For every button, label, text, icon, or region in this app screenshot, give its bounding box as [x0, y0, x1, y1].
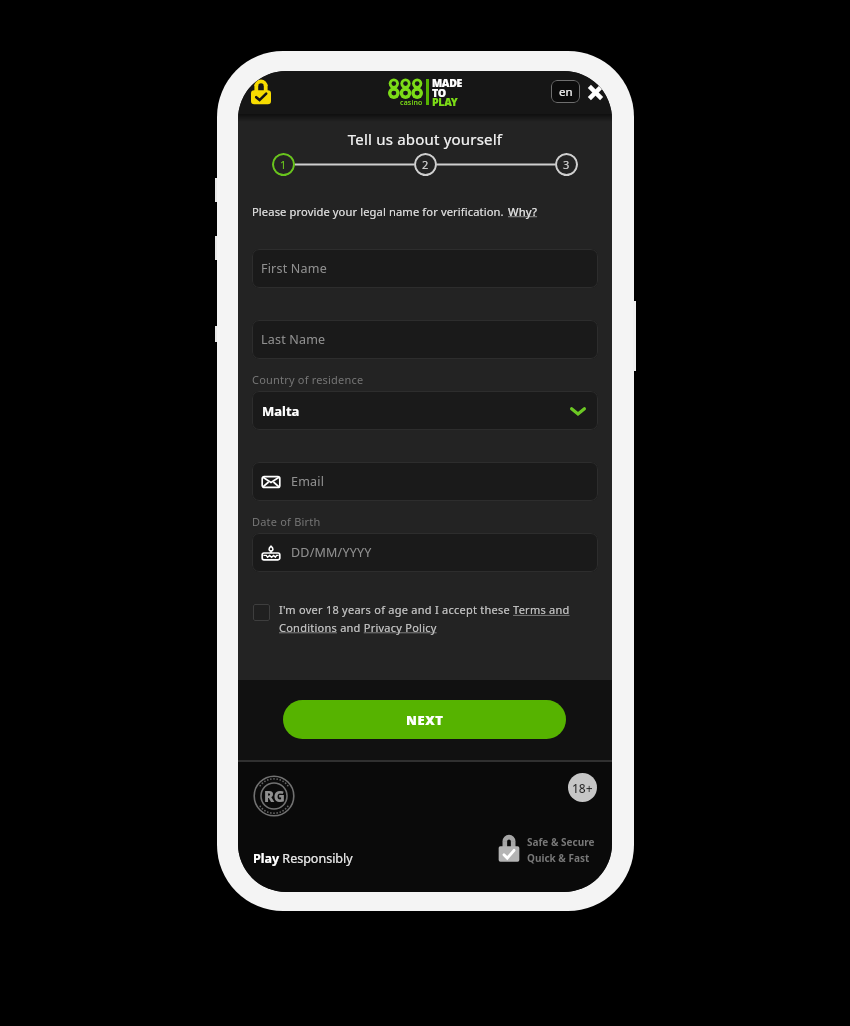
button[interactable]: 3: [555, 153, 578, 176]
button[interactable]: Malta: [252, 391, 598, 430]
button[interactable]: First Name: [252, 249, 598, 288]
staticText: Please provide your legal name for verif…: [252, 204, 504, 219]
staticText: PLAY: [432, 95, 458, 109]
staticText: DD/MM/YYYY: [291, 544, 372, 561]
button[interactable]: I'm over 18 years of age and I accept th…: [279, 602, 583, 635]
staticText: RG: [264, 786, 285, 806]
staticText: Country of residence: [252, 372, 364, 387]
button[interactable]: Accept terms checkbox: [253, 604, 270, 621]
staticText: 18+: [572, 780, 593, 796]
button[interactable]: 18 plus: [568, 773, 597, 802]
button[interactable]: Secure connection: [251, 79, 271, 105]
staticText: TO: [432, 86, 446, 100]
staticText: NEXT: [406, 711, 444, 729]
staticText: First Name: [261, 260, 327, 277]
button[interactable]: 1: [272, 153, 295, 176]
staticText: 1: [280, 157, 287, 172]
staticText: 3: [563, 157, 570, 172]
button[interactable]: en: [551, 80, 580, 103]
button[interactable]: Why?: [508, 204, 538, 219]
staticText: Why?: [508, 204, 538, 219]
staticText: casino: [400, 98, 423, 108]
button[interactable]: Responsible Gaming: [253, 775, 295, 817]
button[interactable]: Last Name: [252, 320, 598, 359]
staticText: Email: [291, 473, 325, 490]
staticText: 2: [422, 157, 429, 172]
button[interactable]: NEXT: [283, 700, 566, 739]
staticText: Last Name: [261, 331, 326, 348]
staticText: en: [559, 84, 573, 100]
staticText: MADE: [432, 76, 463, 90]
button[interactable]: Close: [587, 84, 604, 101]
button[interactable]: DD/MM/YYYY: [252, 533, 598, 572]
staticText: Quick & Fast: [527, 851, 590, 865]
staticText: Play Responsibly: [253, 850, 353, 867]
staticText: Date of Birth: [252, 514, 321, 529]
button[interactable]: 2: [414, 153, 437, 176]
staticText: Safe & Secure: [527, 835, 595, 849]
staticText: Tell us about yourself: [238, 129, 612, 149]
button[interactable]: Email: [252, 462, 598, 501]
staticText: Malta: [262, 402, 300, 420]
staticText: I'm over 18 years of age and I accept th…: [279, 602, 583, 635]
